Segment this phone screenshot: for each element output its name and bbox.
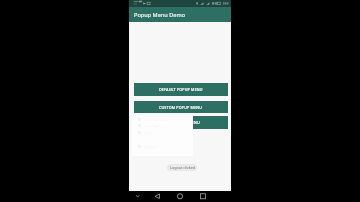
button[interactable]: ICON POPUP MENU — [134, 116, 228, 129]
staticText: DEFAULT POPUP MENU — [159, 87, 203, 92]
button[interactable]: CUSTOM POPUP MENU — [134, 101, 228, 113]
button[interactable]: DEFAULT POPUP MENU — [134, 83, 228, 96]
staticText: Popup Menu Demo — [134, 11, 186, 19]
staticText: Logout clicked — [170, 165, 195, 170]
staticText: ICON POPUP MENU — [163, 120, 200, 125]
staticText: CUSTOM POPUP MENU — [159, 105, 203, 110]
